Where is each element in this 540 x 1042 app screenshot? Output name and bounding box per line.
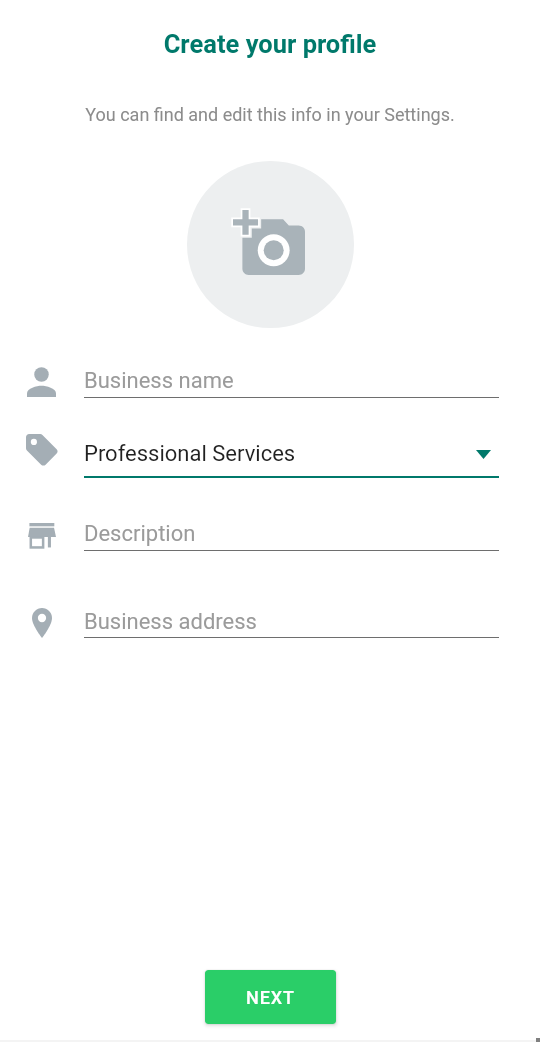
staticText: NEXT	[246, 987, 295, 1008]
button[interactable]: NEXT	[205, 970, 336, 1024]
button[interactable]: Professional Services	[84, 441, 454, 467]
button[interactable]: Add profile photo	[187, 161, 354, 328]
button[interactable]: Description	[84, 521, 454, 547]
staticText: Create your profile	[0, 29, 540, 59]
button[interactable]: Open category dropdown	[459, 431, 507, 479]
button[interactable]: Business name	[84, 368, 454, 394]
button[interactable]: Business address	[84, 609, 454, 635]
staticText: You can find and edit this info in your …	[0, 104, 540, 125]
